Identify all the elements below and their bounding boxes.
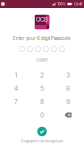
staticText: Enter your 6 digit Passcode: [13, 36, 71, 41]
button[interactable]: 4: [3, 82, 29, 95]
staticText: 2: [40, 71, 44, 79]
button[interactable]: 3: [55, 68, 81, 82]
staticText: Fingerprint not recognized: [21, 139, 63, 143]
staticText: 6: [66, 84, 70, 92]
button[interactable]: 2: [29, 68, 55, 82]
staticText: 4: [14, 84, 18, 92]
button[interactable]: Delete: [55, 108, 81, 122]
button[interactable]: 6: [55, 82, 81, 95]
staticText: 7: [14, 98, 18, 106]
button[interactable]: 8: [29, 95, 55, 108]
staticText: 1: [14, 71, 17, 79]
button[interactable]: 5: [29, 82, 55, 95]
staticText: Forgot?: [36, 58, 48, 62]
button[interactable]: 1: [3, 68, 29, 82]
button[interactable]: Forgot?: [35, 57, 49, 63]
staticText: 100%: [57, 2, 66, 6]
staticText: 3: [66, 71, 70, 79]
button[interactable]: 7: [3, 95, 29, 108]
staticText: 5: [40, 84, 44, 92]
staticText: OCB: [36, 16, 48, 23]
button[interactable]: 0: [29, 108, 55, 122]
staticText: 10:41: [74, 2, 83, 6]
staticText: 8: [40, 98, 44, 106]
button[interactable]: 9: [55, 95, 81, 108]
staticText: 0: [40, 111, 44, 119]
staticText: 9: [66, 98, 70, 106]
